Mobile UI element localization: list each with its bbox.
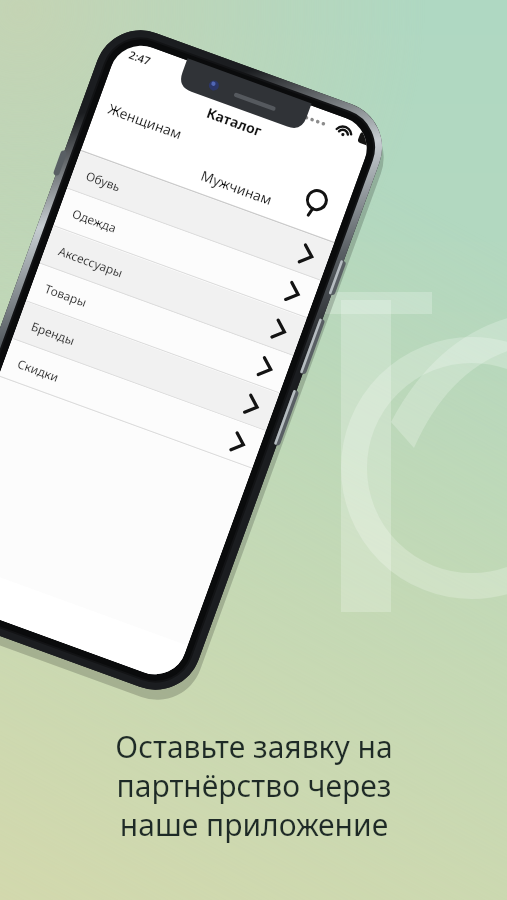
staticText: Женщинам [106, 99, 185, 143]
button[interactable]: Женщинам [100, 94, 190, 149]
staticText: Бренды [29, 318, 78, 348]
staticText: Каталог [204, 103, 265, 141]
staticText: 2:47 [127, 47, 153, 68]
staticText: Оставьте заявку на партнёрство через наш… [115, 726, 393, 844]
button[interactable]: Одежда [53, 189, 320, 318]
staticText: Мужчинам [198, 166, 275, 209]
button[interactable]: Обувь [67, 151, 334, 280]
staticText: Одежда [70, 205, 119, 236]
staticText: Обувь [84, 167, 123, 195]
button[interactable]: Поиск [297, 183, 335, 221]
staticText: Товары [43, 280, 90, 310]
button[interactable]: Аксессуары [40, 226, 307, 355]
button[interactable]: Бренды [12, 302, 279, 431]
staticText: Аксессуары [56, 242, 125, 280]
button[interactable]: Мужчинам [193, 161, 280, 214]
button[interactable]: Скидки [0, 339, 266, 468]
staticText: Скидки [15, 355, 61, 385]
button[interactable]: Товары [26, 264, 293, 393]
